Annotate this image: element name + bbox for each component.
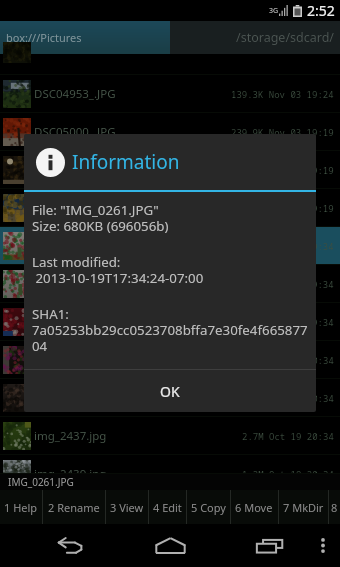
staticText: /storage/sdcard/ <box>236 29 334 46</box>
button[interactable]: 3 View <box>105 490 148 524</box>
button[interactable]: DSC04953_.JPG <box>0 75 340 113</box>
staticText: img_2437.jpg <box>34 428 107 444</box>
button[interactable] <box>0 54 340 75</box>
button[interactable]: box:///Pictures <box>0 21 170 54</box>
staticText: 6 Move <box>235 500 273 515</box>
staticText: 3.1M Oct 19 20:34 <box>242 354 334 366</box>
button[interactable]: 5 Copy <box>186 490 231 524</box>
button[interactable]: More options <box>305 524 340 567</box>
button[interactable]: img_2436.jpg <box>0 341 340 379</box>
staticText: 2 Rename <box>48 500 100 515</box>
staticText: 2:52 <box>307 1 335 20</box>
staticText: 3 View <box>110 500 144 515</box>
staticText: 2.7M Oct 19 20:34 <box>242 430 334 442</box>
staticText: SHA1: 7a05253bb29cc0523708bffa7e30fe4f66… <box>32 307 308 355</box>
staticText: 139.3K Nov 03 19:24 <box>231 88 334 100</box>
staticText: IMG_0261.JPG <box>8 475 74 489</box>
staticText: DSC05004_.JPG <box>34 276 116 292</box>
staticText: Information <box>72 149 180 175</box>
button[interactable]: Home <box>150 524 191 567</box>
staticText: 1 Help <box>4 500 38 515</box>
button[interactable]: 1 Help <box>0 490 42 524</box>
button[interactable]: DSC05004_.JPG <box>0 265 340 303</box>
staticText: OK <box>160 382 180 401</box>
staticText: DSC05000_.JPG <box>34 124 116 140</box>
staticText: 2.1M Oct 19 20:34 <box>242 392 334 404</box>
staticText: 1.2M Oct 19 20:34 <box>242 468 334 480</box>
button[interactable]: 6 Move <box>230 490 277 524</box>
staticText: box:///Pictures <box>6 30 82 45</box>
staticText: DSC04953_.JPG <box>34 86 116 102</box>
button[interactable]: DSC05001_.JPG <box>0 151 340 189</box>
staticText: 3G <box>269 6 279 16</box>
staticText: DSC05001_.JPG <box>34 162 116 178</box>
button[interactable]: 2 Rename <box>42 490 105 524</box>
button[interactable]: Back <box>51 524 91 567</box>
staticText: 5 Copy <box>191 500 226 515</box>
button[interactable]: OK <box>24 370 316 412</box>
button[interactable]: DSC05003_.JPG <box>0 227 340 265</box>
button[interactable]: img_2437.jpg <box>0 417 340 455</box>
staticText: 155.1K Nov 03 19:34 <box>231 240 334 252</box>
staticText: DSC05005_.JPG <box>34 314 116 330</box>
button[interactable]: 7 MkDir <box>278 490 328 524</box>
button[interactable]: DSC05000_.JPG <box>0 113 340 151</box>
button[interactable]: img_2439.jpg <box>0 455 340 474</box>
button[interactable]: 8 <box>328 490 340 524</box>
staticText: Last modified: 2013-10-19T17:34:24-07:00 <box>32 255 204 287</box>
staticText: 4 Edit <box>153 500 182 515</box>
button[interactable]: DSC05005_.JPG <box>0 303 340 341</box>
staticText: 239.9K Nov 03 19:19 <box>231 126 334 138</box>
staticText: 7 MkDir <box>283 500 324 515</box>
button[interactable]: img_2438.jpg <box>0 379 340 417</box>
staticText: 141.0K Nov 03 19:34 <box>231 316 334 328</box>
staticText: 8 <box>331 500 338 515</box>
button[interactable]: 4 Edit <box>148 490 186 524</box>
staticText: File: "IMG_0261.JPG" Size: 680KB (696056… <box>32 203 169 235</box>
staticText: img_2439.jpg <box>34 466 107 482</box>
staticText: 132.4K Nov 03 19:34 <box>231 278 334 290</box>
button[interactable]: /storage/sdcard/ <box>170 21 340 54</box>
button[interactable]: DSC05002_.JPG <box>0 189 340 227</box>
staticText: DSC05002_.JPG <box>34 200 116 216</box>
button[interactable]: Recent apps <box>250 524 291 567</box>
staticText: 180.3K Nov 03 19:19 <box>231 164 334 176</box>
staticText: 120.6K Nov 03 19:19 <box>231 202 334 214</box>
